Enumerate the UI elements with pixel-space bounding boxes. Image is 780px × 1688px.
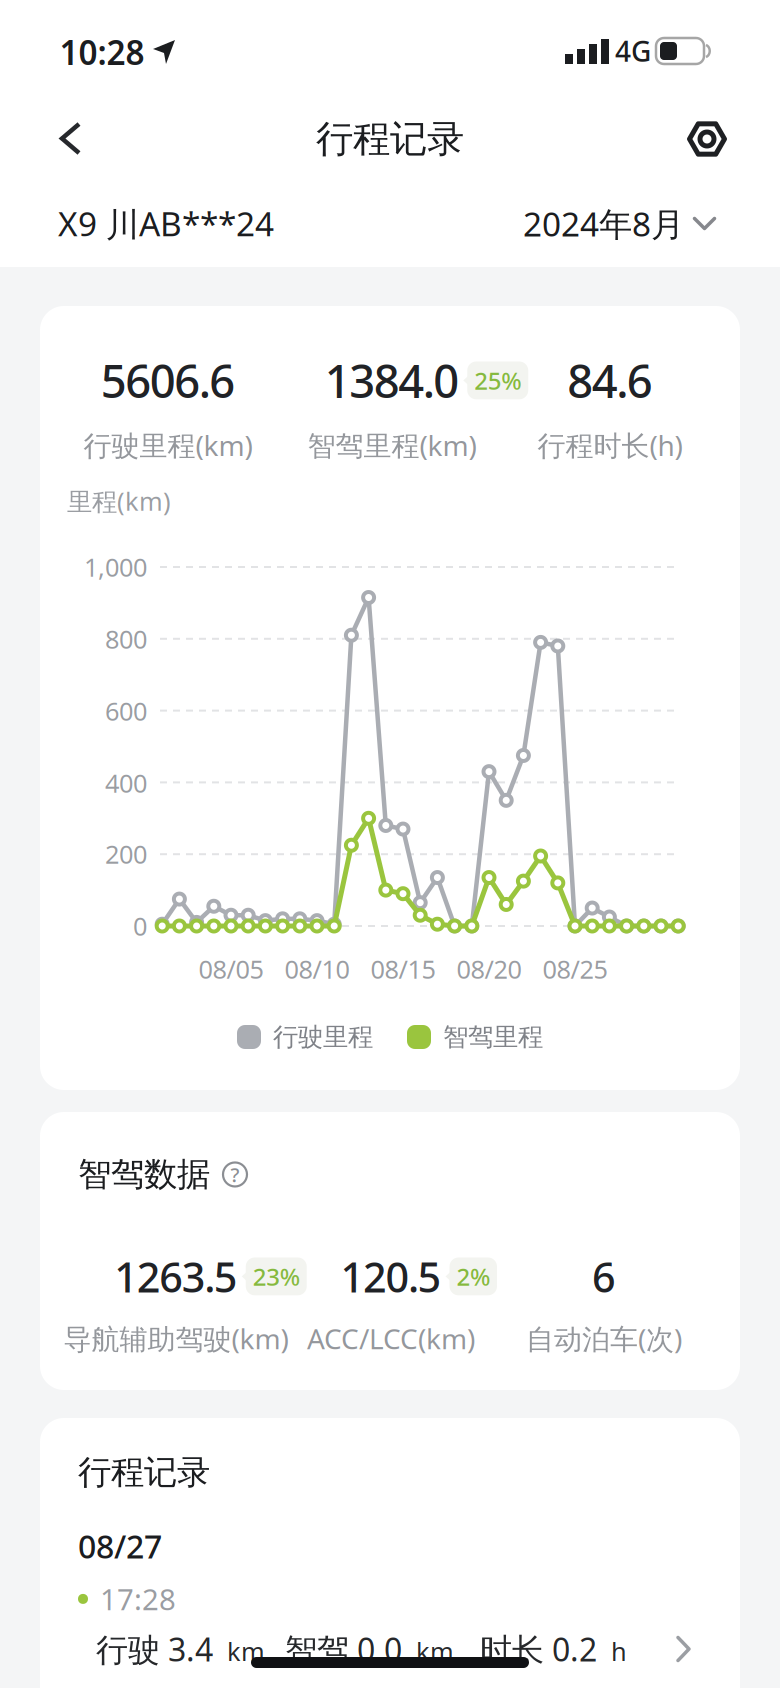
staticText: ? bbox=[230, 1161, 239, 1188]
staticText: 智驾里程 bbox=[443, 1021, 543, 1052]
staticText: 里程(km) bbox=[67, 484, 171, 518]
staticText: 08/15 bbox=[370, 952, 435, 986]
staticText: 智驾 0.0 bbox=[285, 1628, 410, 1670]
button[interactable]: Back bbox=[59, 121, 83, 157]
staticText: 2024年8月 bbox=[523, 201, 684, 246]
staticText: 导航辅助驾驶(km) bbox=[63, 1320, 288, 1357]
staticText: 行驶 3.4 bbox=[96, 1628, 221, 1670]
staticText: 时长 0.2 bbox=[480, 1628, 605, 1670]
staticText: 1263.5 bbox=[114, 1249, 238, 1304]
button[interactable]: Settings bbox=[685, 119, 729, 159]
staticText: 23% bbox=[253, 1260, 300, 1292]
staticText: 2% bbox=[456, 1260, 490, 1292]
staticText: 08/27 bbox=[78, 1525, 162, 1567]
staticText: 行程记录 bbox=[316, 116, 464, 162]
staticText: 智驾里程(km) bbox=[307, 426, 476, 464]
staticText: 4G bbox=[615, 32, 651, 70]
staticText: X9 川AB***24 bbox=[58, 201, 274, 246]
staticText: 行程时长(h) bbox=[537, 426, 682, 464]
staticText: 行驶里程(km) bbox=[83, 426, 252, 464]
button[interactable]: 2024年8月 bbox=[523, 201, 716, 246]
staticText: 行驶里程 bbox=[273, 1021, 373, 1052]
staticText: 10:28 bbox=[59, 30, 144, 74]
staticText: 400 bbox=[105, 766, 147, 800]
staticText: 08/20 bbox=[456, 952, 521, 986]
button[interactable]: Help bbox=[222, 1161, 248, 1187]
staticText: 08/25 bbox=[542, 952, 607, 986]
staticText: ACC/LCC(km) bbox=[307, 1320, 475, 1357]
staticText: 1384.0 bbox=[325, 350, 459, 410]
staticText: 2% bbox=[292, 1260, 325, 1292]
staticText: 0 bbox=[133, 909, 147, 943]
staticText: 200 bbox=[105, 837, 147, 871]
button[interactable]: 行驶 3.4 bbox=[40, 1628, 740, 1670]
staticText: 800 bbox=[105, 622, 147, 656]
staticText: 08/05 bbox=[198, 952, 263, 986]
staticText: 25% bbox=[474, 364, 521, 396]
staticText: km bbox=[416, 1634, 454, 1668]
staticText: 自动泊车(次) bbox=[526, 1320, 682, 1357]
staticText: 600 bbox=[105, 694, 147, 728]
staticText: 84.6 bbox=[567, 350, 653, 410]
staticText: 行程记录 bbox=[78, 1452, 210, 1493]
staticText: 08/10 bbox=[284, 952, 349, 986]
staticText: 6 bbox=[592, 1249, 616, 1304]
staticText: 1,000 bbox=[84, 550, 147, 584]
staticText: 5606.6 bbox=[101, 350, 235, 410]
staticText: 120.5 bbox=[340, 1249, 441, 1304]
staticText: 17:28 bbox=[100, 1579, 176, 1618]
staticText: h bbox=[611, 1634, 627, 1668]
staticText: 智驾数据 bbox=[78, 1154, 210, 1195]
staticText: km bbox=[227, 1634, 265, 1668]
